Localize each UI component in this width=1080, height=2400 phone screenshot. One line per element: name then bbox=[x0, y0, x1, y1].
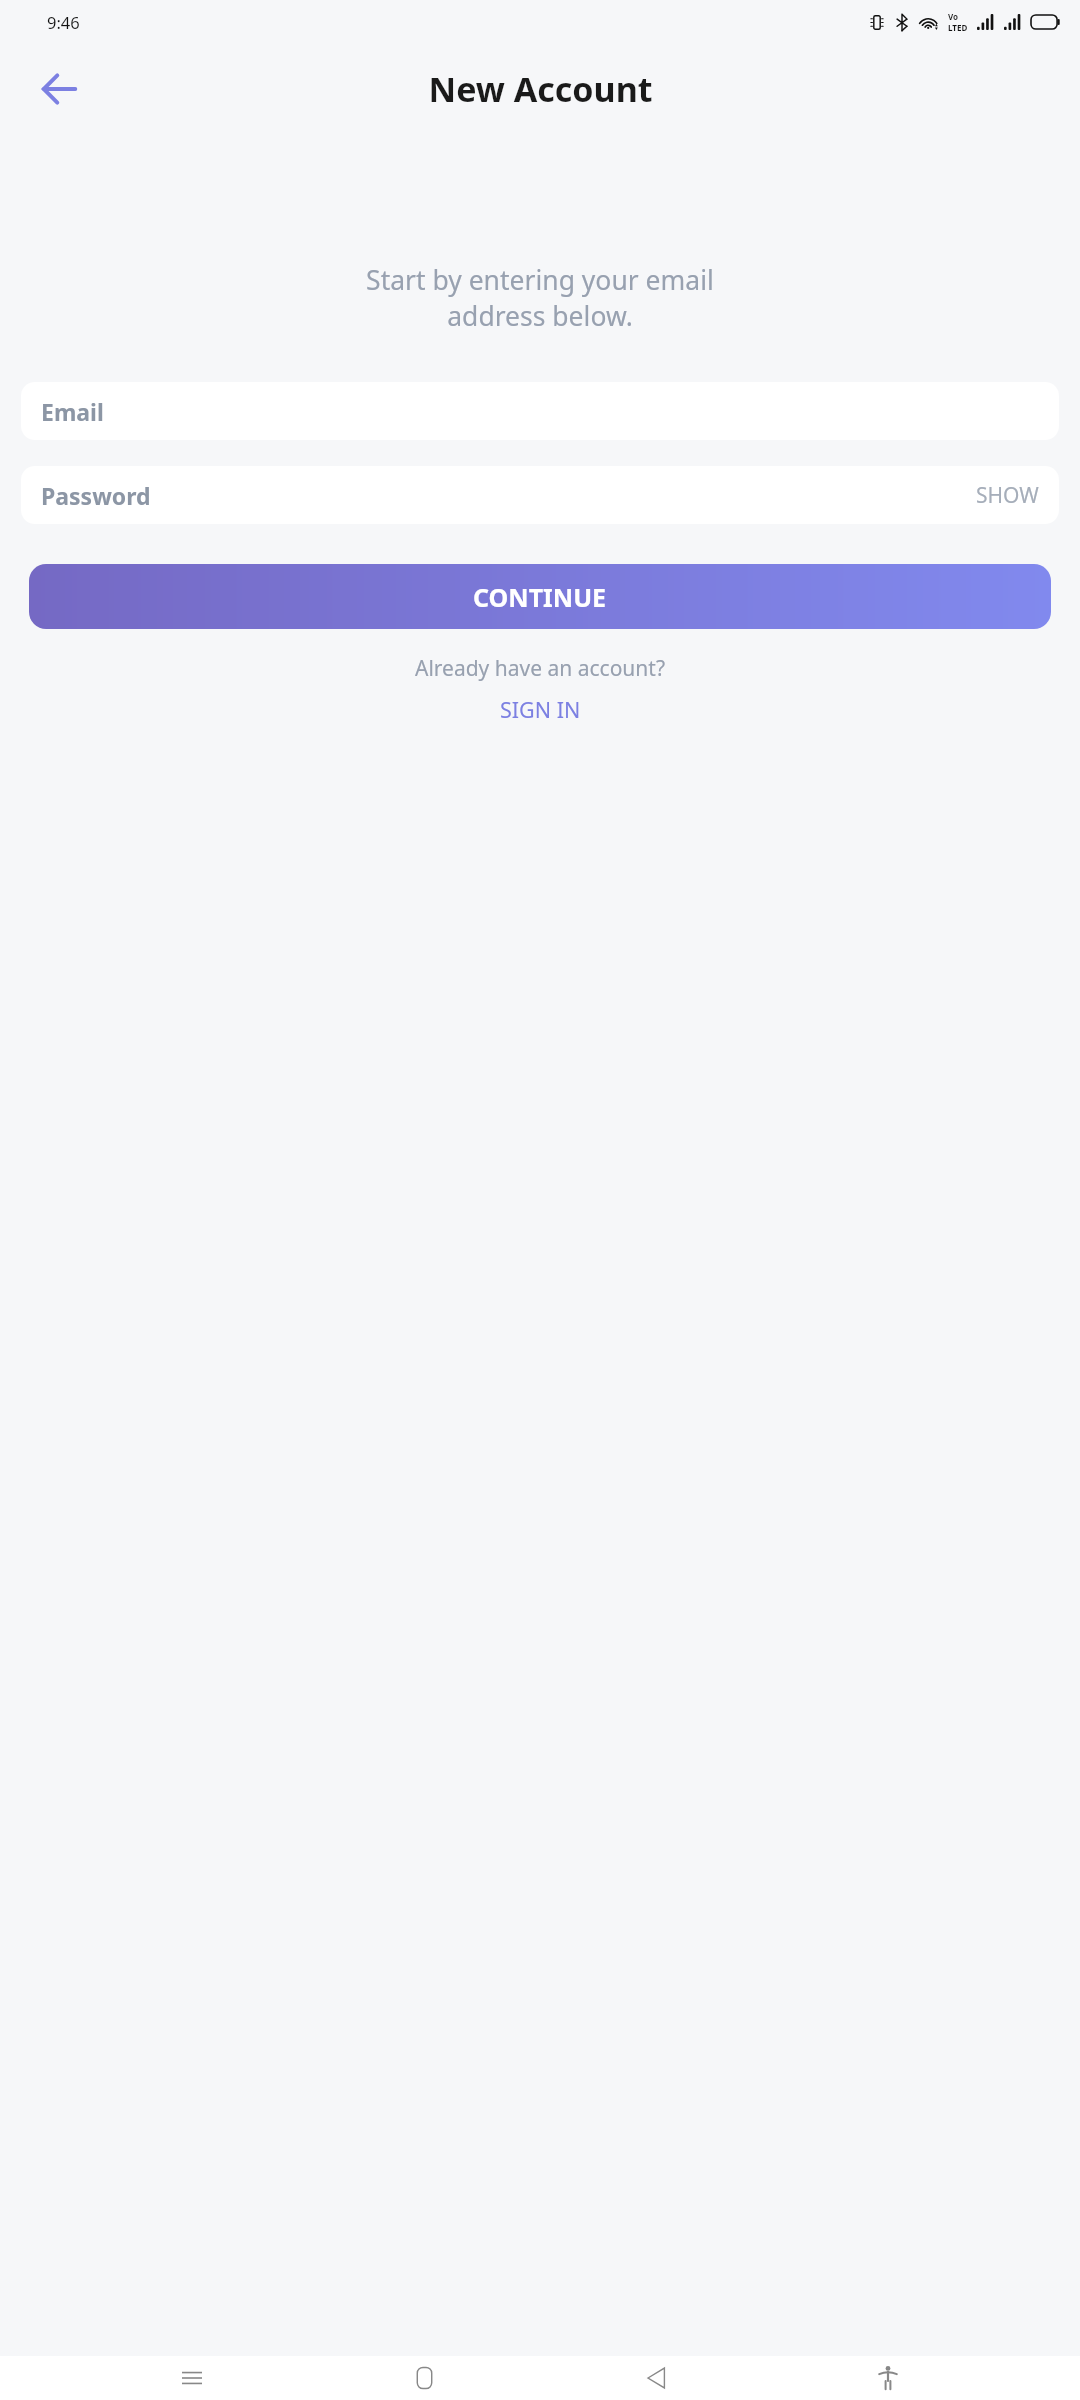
button[interactable]: Accessibility bbox=[848, 2356, 928, 2400]
button[interactable]: SIGN IN bbox=[486, 689, 595, 730]
staticText: CONTINUE bbox=[473, 580, 607, 614]
staticText: Email bbox=[41, 396, 104, 427]
button[interactable]: Home bbox=[384, 2356, 464, 2400]
staticText: 9:46 bbox=[47, 11, 80, 33]
staticText: New Account bbox=[428, 66, 653, 112]
button[interactable]: Back bbox=[616, 2356, 696, 2400]
staticText: SIGN IN bbox=[500, 695, 581, 724]
staticText: Password bbox=[41, 480, 151, 511]
staticText: Start by entering your email address bel… bbox=[20, 262, 1060, 334]
button[interactable]: Recent apps bbox=[152, 2356, 232, 2400]
button[interactable]: Password bbox=[21, 466, 1059, 524]
staticText: Vo bbox=[948, 11, 959, 22]
button[interactable]: Back bbox=[30, 60, 88, 118]
button[interactable]: CONTINUE bbox=[29, 564, 1051, 629]
staticText: Already have an account? bbox=[0, 654, 1080, 683]
button[interactable]: Email bbox=[21, 382, 1059, 440]
staticText: LTED bbox=[948, 22, 968, 33]
staticText: SHOW bbox=[976, 481, 1039, 510]
